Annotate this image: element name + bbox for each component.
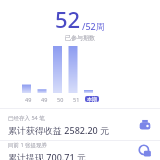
staticText: /52周: [82, 20, 105, 32]
staticText: 本期: [87, 96, 97, 102]
staticText: 52: [55, 4, 81, 34]
staticText: 51: [73, 96, 80, 103]
other: Withdraw detail: [138, 144, 152, 158]
button[interactable]: 已经存入 54 笔: [0, 109, 160, 140]
staticText: 已经存入 54 笔: [8, 114, 45, 122]
staticText: 50: [57, 96, 64, 103]
staticText: 49: [25, 96, 32, 103]
staticText: 累计提现 700.71 元: [8, 151, 86, 160]
staticText: 累计获得收益 2582.20 元: [8, 124, 110, 136]
staticText: 目前 1 张提现券: [8, 141, 48, 149]
staticText: 49: [41, 96, 48, 103]
staticText: 已参与期数: [0, 34, 160, 42]
other: Earnings detail: [138, 118, 152, 132]
button[interactable]: 目前 1 张提现券: [0, 141, 160, 160]
